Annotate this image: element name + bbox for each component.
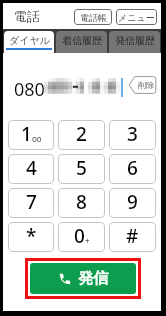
- staticText: +: [85, 235, 90, 246]
- staticText: 1: [21, 121, 32, 147]
- staticText: 6: [127, 155, 138, 181]
- staticText: 2: [76, 121, 87, 147]
- button[interactable]: 3: [109, 120, 156, 150]
- button[interactable]: 5: [58, 154, 105, 184]
- staticText: 電話帳: [80, 12, 107, 23]
- staticText: 9: [127, 189, 138, 215]
- staticText: 0: [74, 223, 85, 249]
- staticText: oo: [32, 133, 42, 144]
- staticText: 5: [76, 155, 87, 181]
- staticText: 3: [127, 121, 138, 147]
- staticText: *: [26, 223, 37, 249]
- button[interactable]: 9: [109, 188, 156, 218]
- staticText: 080-: [14, 77, 51, 102]
- button[interactable]: メニュー: [116, 9, 157, 25]
- staticText: 電話: [14, 8, 40, 24]
- button[interactable]: 0: [58, 222, 105, 252]
- button[interactable]: 8: [58, 188, 105, 218]
- staticText: #: [126, 223, 139, 249]
- staticText: 着信履歴: [62, 34, 102, 47]
- staticText: 削除: [138, 80, 154, 90]
- button[interactable]: 6: [109, 154, 156, 184]
- button[interactable]: 7: [8, 188, 54, 218]
- button[interactable]: #: [109, 222, 156, 252]
- button[interactable]: 発信履歴: [109, 31, 160, 53]
- staticText: 発信: [78, 269, 108, 288]
- button[interactable]: 1: [8, 120, 54, 150]
- button[interactable]: 電話帳: [74, 9, 112, 25]
- staticText: 発信履歴: [115, 34, 155, 47]
- staticText: ダイヤル: [9, 34, 50, 47]
- staticText: 7: [26, 189, 37, 215]
- button[interactable]: 発信: [30, 263, 136, 294]
- button[interactable]: 着信履歴: [56, 31, 107, 53]
- staticText: メニュー: [118, 12, 155, 23]
- button[interactable]: *: [8, 222, 54, 252]
- staticText: 4: [26, 155, 37, 181]
- staticText: 8: [76, 189, 87, 215]
- button[interactable]: 削除: [128, 76, 157, 94]
- button[interactable]: 2: [58, 120, 105, 150]
- button[interactable]: 4: [8, 154, 54, 184]
- button[interactable]: ダイヤル: [4, 31, 54, 53]
